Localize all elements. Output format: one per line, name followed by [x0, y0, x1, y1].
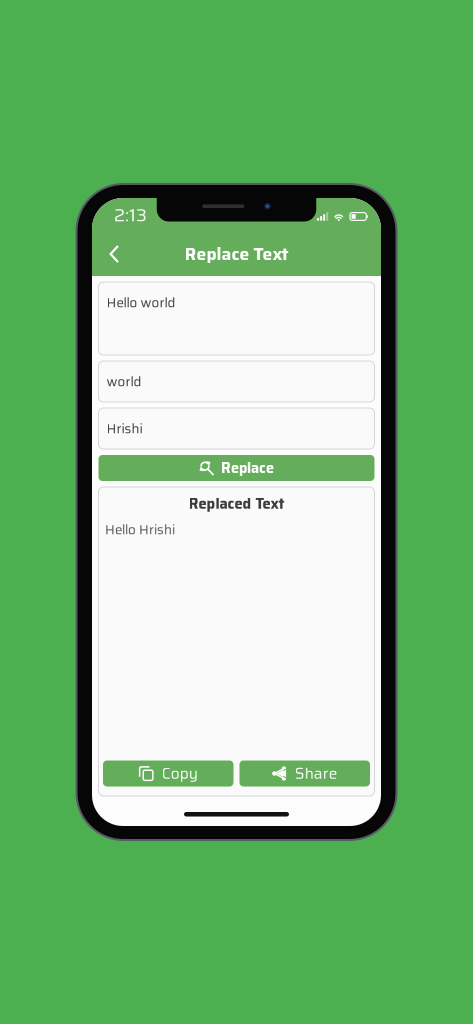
staticText: Hrishi [106, 418, 142, 439]
staticText: Replace Text [184, 240, 288, 268]
staticText: Copy [162, 761, 198, 785]
staticText: Hello Hrishi [105, 519, 175, 540]
staticText: 2:13 [114, 201, 147, 229]
staticText: world [106, 371, 141, 392]
button[interactable]: Back [97, 237, 131, 271]
staticText: Share [295, 761, 338, 785]
staticText: Hello world [106, 292, 175, 313]
staticText: Replace [221, 457, 274, 479]
button[interactable]: Copy [103, 760, 233, 786]
staticText: Replaced Text [188, 492, 284, 515]
button[interactable]: Replace [98, 455, 374, 481]
button[interactable]: Share [239, 760, 370, 786]
